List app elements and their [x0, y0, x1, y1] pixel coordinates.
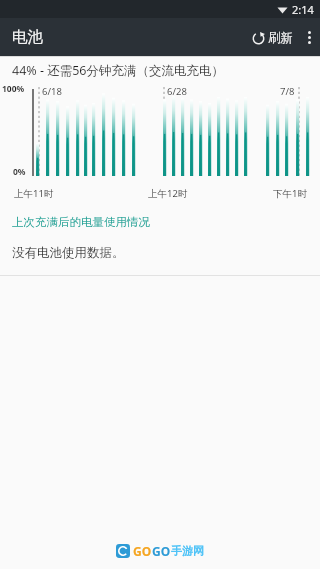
button[interactable]: More options	[299, 22, 320, 53]
button[interactable]: 上次充满后的电量使用情况	[0, 213, 320, 231]
staticText: 下午1时	[273, 187, 307, 200]
staticText: 6/18	[42, 85, 62, 98]
button[interactable]: 刷新	[246, 24, 299, 52]
staticText: GO	[133, 543, 152, 559]
staticText: 手游网	[171, 544, 204, 558]
staticText: GO	[152, 543, 171, 559]
staticText: 上次充满后的电量使用情况	[12, 215, 150, 229]
staticText: 100%	[2, 83, 25, 95]
staticText: 没有电池使用数据。	[12, 245, 125, 261]
staticText: 刷新	[268, 30, 293, 46]
staticText: 0%	[13, 166, 26, 178]
staticText: 44% - 还需56分钟充满（交流电充电）	[12, 62, 225, 79]
staticText: 上午12时	[148, 187, 188, 200]
staticText: 2:14	[292, 2, 314, 17]
staticText: 6/28	[167, 85, 187, 98]
staticText: 7/8	[280, 85, 295, 98]
staticText: 上午11时	[14, 187, 54, 200]
staticText: 电池	[12, 27, 43, 47]
